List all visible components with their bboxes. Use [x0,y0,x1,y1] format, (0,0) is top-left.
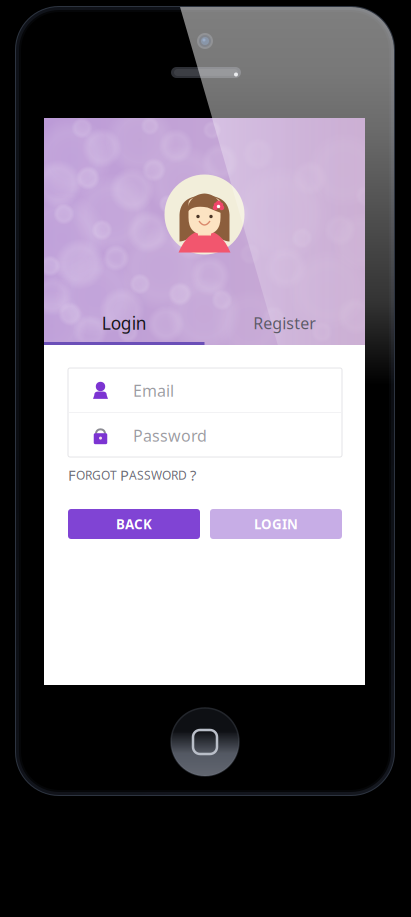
staticText: F [68,465,76,485]
staticText: P [120,465,129,485]
button[interactable]: LOGIN [210,509,342,539]
staticText: Register [253,312,316,334]
button[interactable]: Register [204,304,365,342]
staticText: Email [133,380,174,401]
staticText: ORGOT [76,467,117,483]
staticText: Login [102,311,147,334]
button[interactable]: Login [44,304,204,342]
staticText: Password [133,425,207,446]
button[interactable]: BACK [68,509,200,539]
staticText: ASSWORD [129,467,187,483]
button[interactable]: F [68,465,218,485]
staticText: BACK [116,515,152,533]
staticText: LOGIN [254,515,298,533]
staticText: ? [190,465,196,485]
